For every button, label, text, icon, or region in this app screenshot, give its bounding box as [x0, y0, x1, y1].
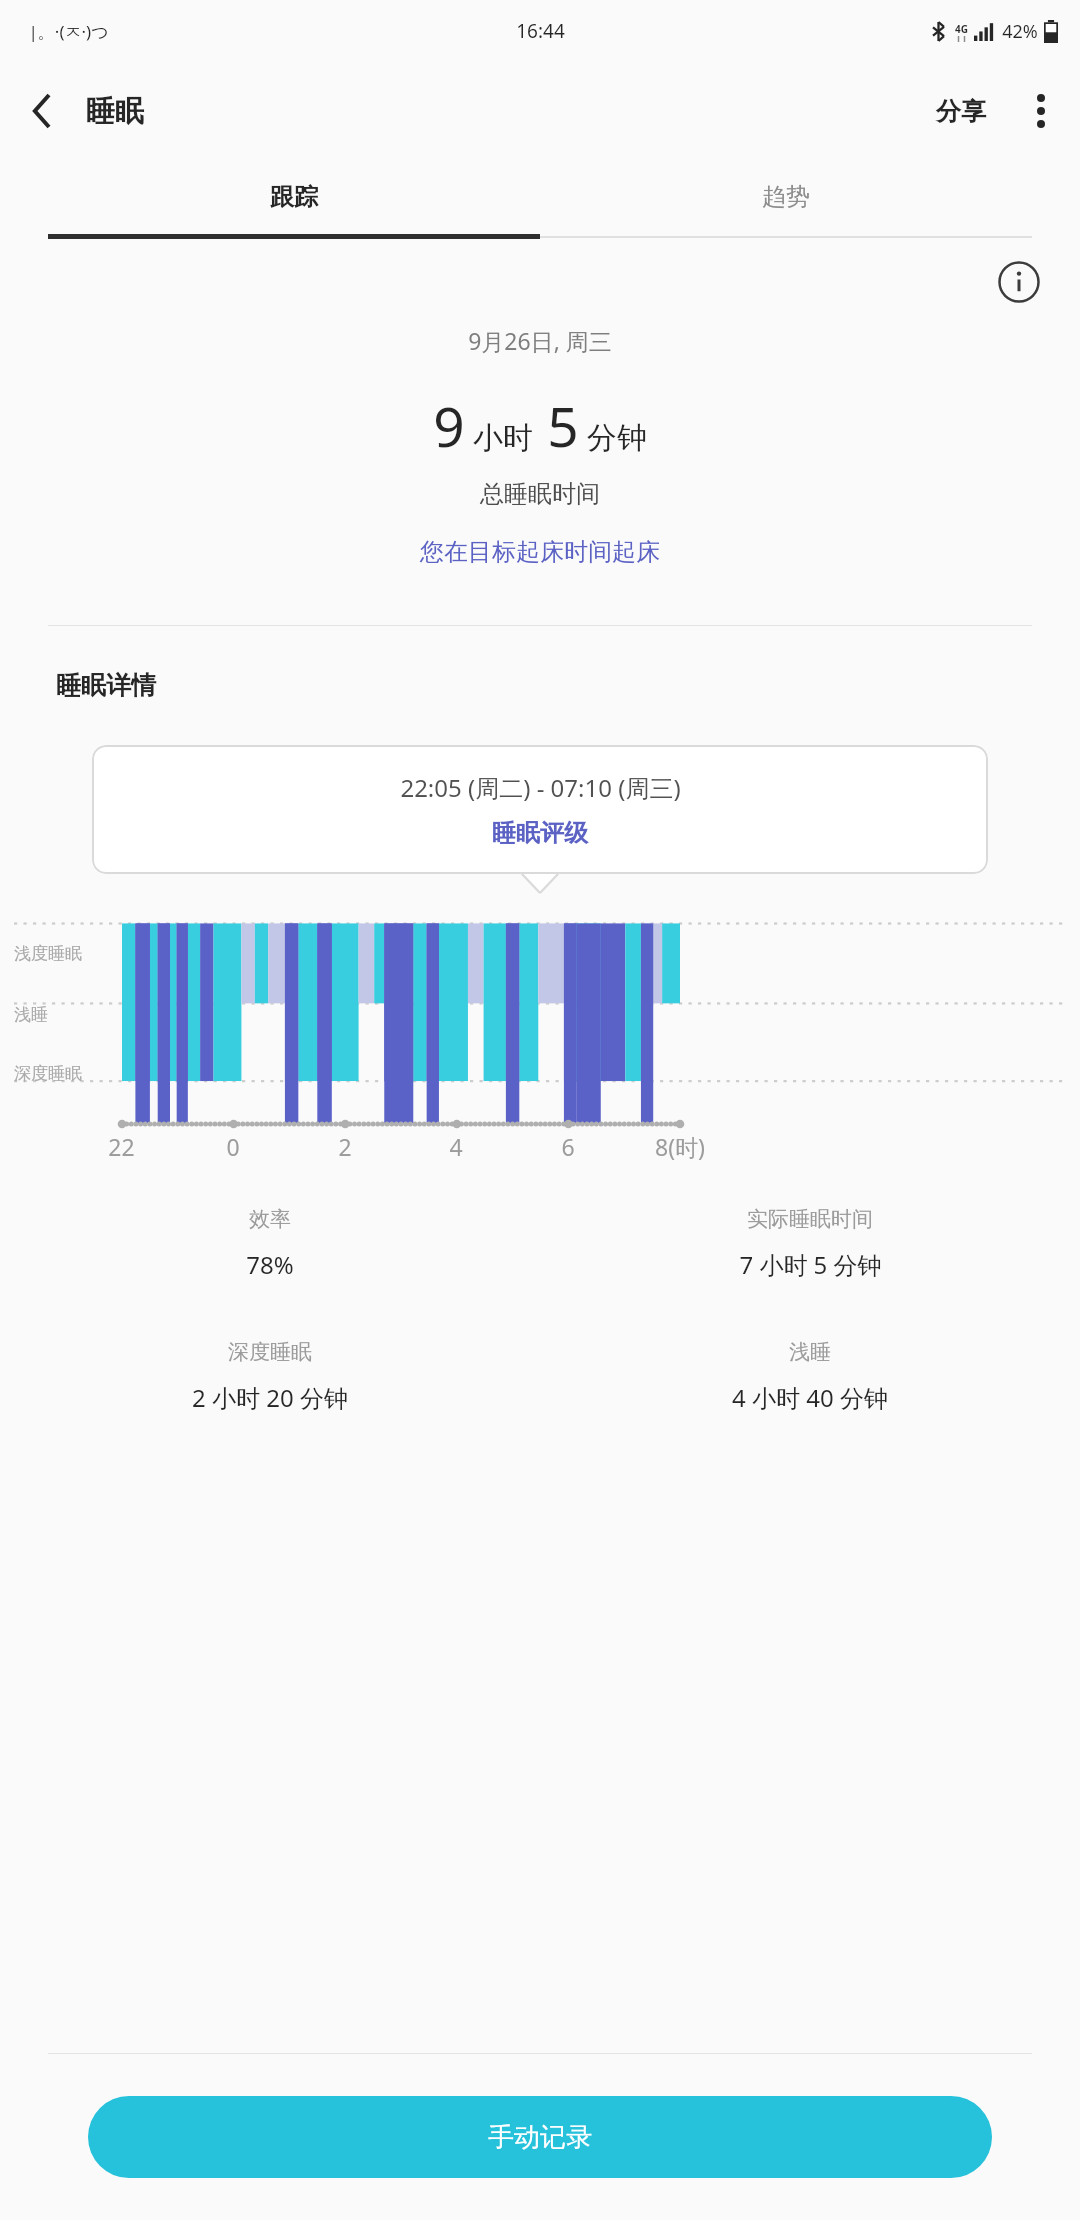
staticText: 78% [246, 1248, 294, 1281]
staticText: 22 [108, 1131, 135, 1162]
staticText: 实际睡眠时间 [747, 1206, 873, 1232]
staticText: 小时 [473, 419, 533, 457]
staticText: 浅睡 [14, 1004, 48, 1025]
staticText: 浅睡 [789, 1339, 831, 1365]
staticText: 总睡眠时间 [480, 479, 600, 509]
staticText: 0 [226, 1131, 240, 1162]
staticText: 2 小时 20 分钟 [192, 1381, 348, 1414]
staticText: 分享 [936, 96, 986, 127]
button[interactable]: Back [0, 68, 86, 154]
staticText: 42% [1002, 19, 1038, 44]
staticText: |。·(ㅈ·)つ [28, 20, 109, 43]
staticText: 睡眠评级 [492, 818, 588, 848]
staticText: 5 [547, 388, 579, 463]
button[interactable]: 趋势 [540, 160, 1032, 234]
staticText: 趋势 [762, 182, 810, 212]
button[interactable]: 22:05 (周二) - 07:10 (周三) [92, 745, 988, 874]
staticText: 2 [338, 1131, 352, 1162]
staticText: 跟踪 [270, 182, 318, 212]
staticText: 效率 [249, 1206, 291, 1232]
button[interactable]: 分享 [920, 80, 1002, 143]
staticText: 手动记录 [488, 2121, 592, 2154]
staticText: 4 小时 40 分钟 [732, 1381, 888, 1414]
button[interactable]: 您在目标起床时间起床 [0, 537, 1080, 567]
button[interactable]: 手动记录 [88, 2096, 992, 2178]
staticText: 9月26日, 周三 [468, 325, 612, 356]
staticText: 8(时) [655, 1131, 705, 1162]
staticText: 您在目标起床时间起床 [420, 537, 660, 567]
staticText: 睡眠 [86, 93, 144, 130]
button[interactable]: More options [1002, 72, 1080, 150]
staticText: 深度睡眠 [14, 1063, 82, 1084]
staticText: 睡眠详情 [56, 670, 156, 701]
staticText: 7 小时 5 分钟 [739, 1248, 882, 1281]
staticText: 9 [433, 388, 465, 463]
staticText: 深度睡眠 [228, 1339, 312, 1365]
staticText: 分钟 [587, 419, 647, 457]
staticText: 16:44 [516, 18, 565, 44]
button[interactable]: Information [990, 253, 1048, 311]
staticText: 22:05 (周二) - 07:10 (周三) [400, 771, 681, 804]
staticText: 4 [449, 1131, 463, 1162]
staticText: 浅度睡眠 [14, 943, 82, 964]
staticText: 4G [955, 22, 968, 36]
staticText: 6 [561, 1131, 575, 1162]
button[interactable]: 跟踪 [48, 160, 540, 234]
